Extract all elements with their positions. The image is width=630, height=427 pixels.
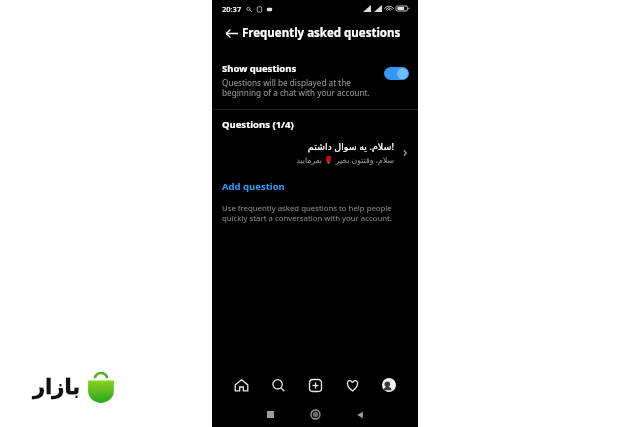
button[interactable]: سلام. یه سوال داشتم!: [212, 138, 418, 168]
staticText: Questions (1/4): [222, 118, 294, 131]
button[interactable]: Back: [219, 21, 243, 45]
staticText: Frequently asked questions: [242, 25, 401, 41]
button[interactable]: Home: [226, 370, 256, 400]
staticText: سلام، وقتتون بخیر 🌹 بفرمایید: [296, 155, 394, 166]
button[interactable]: Show questions toggle: [384, 67, 409, 80]
button[interactable]: Recents: [257, 402, 283, 427]
staticText: Add question: [222, 180, 285, 193]
button[interactable]: Activity: [337, 370, 367, 400]
button[interactable]: Profile: [374, 370, 404, 400]
button[interactable]: Back: [347, 402, 373, 427]
button[interactable]: Home: [302, 402, 328, 427]
button[interactable]: Add question: [212, 179, 295, 194]
staticText: Use frequently asked questions to help p…: [222, 203, 406, 223]
staticText: بازار: [33, 375, 81, 399]
button[interactable]: Search: [263, 370, 293, 400]
staticText: سلام. یه سوال داشتم!: [307, 140, 394, 153]
staticText: Questions will be displayed at the begin…: [222, 77, 378, 99]
button[interactable]: Show questions: [212, 57, 418, 105]
staticText: 20:37: [222, 4, 242, 14]
staticText: Show questions: [222, 62, 297, 75]
button[interactable]: Create: [300, 370, 330, 400]
